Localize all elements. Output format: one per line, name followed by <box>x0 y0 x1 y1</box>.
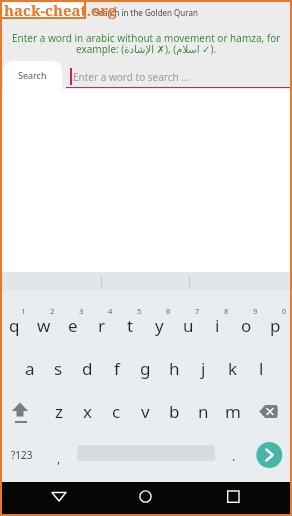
button[interactable]: n <box>189 390 218 433</box>
staticText: r <box>98 314 106 337</box>
button[interactable] <box>73 433 219 476</box>
staticText: 4 <box>108 306 113 316</box>
staticText: k <box>228 357 238 380</box>
staticText: 2 <box>50 306 55 316</box>
button[interactable] <box>45 482 73 516</box>
staticText: m <box>225 400 241 423</box>
button[interactable] <box>247 390 291 433</box>
staticText: u <box>183 314 194 337</box>
staticText: ?123 <box>11 448 33 462</box>
button[interactable] <box>248 433 292 476</box>
staticText: p <box>270 314 281 337</box>
button[interactable]: l <box>247 347 276 390</box>
button[interactable] <box>0 390 44 433</box>
button[interactable] <box>131 482 160 516</box>
button[interactable]: Search <box>3 61 62 89</box>
button[interactable]: e <box>58 304 87 347</box>
button[interactable] <box>219 482 248 516</box>
button[interactable]: k <box>218 347 247 390</box>
staticText: o <box>241 314 252 337</box>
staticText: 7 <box>195 306 200 316</box>
staticText: . <box>232 448 236 464</box>
button[interactable]: w <box>29 304 58 347</box>
staticText: Search in the Golden Quran <box>94 7 198 18</box>
staticText: t <box>127 314 134 337</box>
staticText: w <box>37 314 51 337</box>
staticText: f <box>114 357 120 380</box>
staticText: Enter a word in arabic without a movemen… <box>12 31 281 45</box>
button[interactable]: , <box>44 433 73 476</box>
button[interactable]: y <box>145 304 174 347</box>
button[interactable]: d <box>73 347 102 390</box>
staticText: n <box>198 400 209 423</box>
button[interactable]: r <box>87 304 116 347</box>
staticText: Enter a word to search ... <box>73 70 190 84</box>
staticText: Search <box>18 69 47 81</box>
button[interactable]: ?123 <box>0 433 44 476</box>
staticText: b <box>169 400 180 423</box>
button[interactable]: h <box>160 347 189 390</box>
button[interactable]: a <box>15 347 44 390</box>
staticText: x <box>83 400 92 423</box>
button[interactable]: x <box>73 390 102 433</box>
staticText: 9 <box>253 306 258 316</box>
staticText: 0 <box>282 306 287 316</box>
staticText: a <box>25 357 35 380</box>
staticText: 5 <box>137 306 142 316</box>
button[interactable]: f <box>102 347 131 390</box>
staticText: , <box>57 450 61 466</box>
button[interactable]: q <box>0 304 29 347</box>
button[interactable]: j <box>189 347 218 390</box>
staticText: l <box>259 357 264 380</box>
button[interactable]: o <box>232 304 261 347</box>
staticText: g <box>140 357 151 380</box>
staticText: 1 <box>21 306 26 316</box>
staticText: j <box>201 357 206 380</box>
staticText: 3 <box>79 306 84 316</box>
button[interactable]: z <box>44 390 73 433</box>
button[interactable]: v <box>131 390 160 433</box>
staticText: d <box>82 357 93 380</box>
staticText: h <box>169 357 180 380</box>
button[interactable]: b <box>160 390 189 433</box>
button[interactable]: Enter a word to search ... <box>66 61 292 89</box>
button[interactable]: u <box>174 304 203 347</box>
button[interactable]: t <box>116 304 145 347</box>
staticText: 6 <box>166 306 171 316</box>
button[interactable]: s <box>44 347 73 390</box>
staticText: 8 <box>224 306 229 316</box>
button[interactable]: i <box>203 304 232 347</box>
staticText: c <box>112 400 121 423</box>
button[interactable]: . <box>219 433 248 476</box>
staticText: q <box>9 314 20 337</box>
staticText: z <box>55 400 63 423</box>
button[interactable]: g <box>131 347 160 390</box>
staticText: s <box>54 357 63 380</box>
button[interactable]: m <box>218 390 247 433</box>
staticText: example: (الإشادة ✗), (اسلام ✓). <box>76 42 217 56</box>
staticText: hack-cheat.org <box>4 0 117 20</box>
staticText: e <box>68 314 78 337</box>
staticText: i <box>215 314 220 337</box>
button[interactable]: c <box>102 390 131 433</box>
button[interactable]: p <box>261 304 290 347</box>
staticText: v <box>141 400 150 423</box>
staticText: y <box>155 314 164 337</box>
